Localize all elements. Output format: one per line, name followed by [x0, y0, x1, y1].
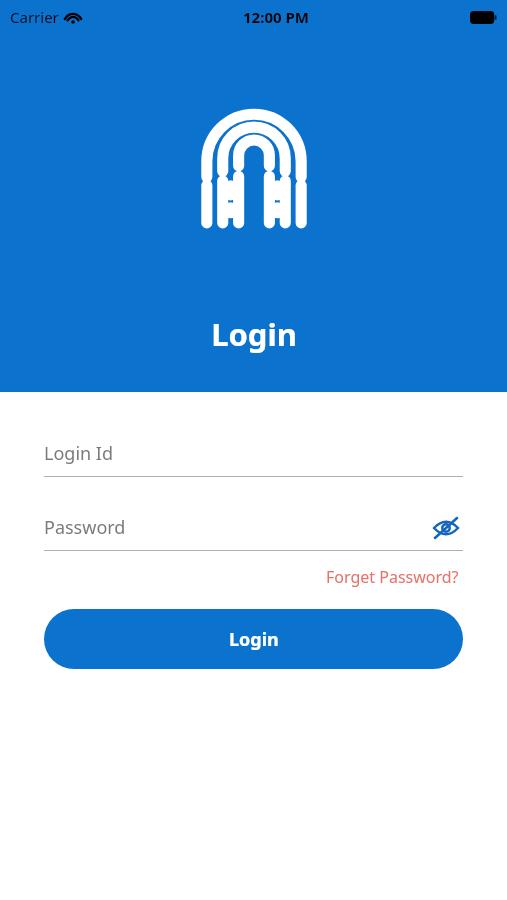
- staticText: Carrier: [10, 7, 59, 27]
- staticText: Login: [211, 313, 297, 355]
- staticText: Password: [44, 515, 126, 540]
- button[interactable]: Forget Password?: [322, 562, 463, 592]
- staticText: Login Id: [44, 441, 114, 466]
- button[interactable]: Login Id: [44, 431, 463, 476]
- button[interactable]: Login: [44, 609, 463, 669]
- button[interactable]: Show password: [429, 511, 463, 545]
- button[interactable]: Password: [44, 505, 429, 550]
- staticText: Login: [229, 627, 279, 652]
- staticText: Forget Password?: [326, 566, 459, 588]
- staticText: 12:00 PM: [243, 7, 309, 27]
